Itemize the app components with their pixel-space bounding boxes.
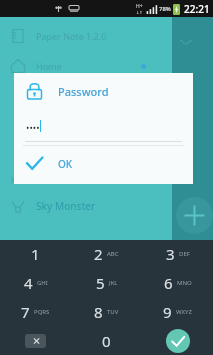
staticText: 8 xyxy=(94,302,103,322)
staticText: 9 xyxy=(163,302,172,322)
button[interactable]: OK xyxy=(14,147,193,180)
staticText: Password xyxy=(58,84,109,99)
staticText: •••• xyxy=(26,121,40,133)
button[interactable]: Add note xyxy=(176,197,213,234)
staticText: WXYZ xyxy=(176,308,192,316)
staticText: Paper Note 1.2.0 xyxy=(36,30,107,42)
staticText: 3 xyxy=(166,244,175,264)
staticText: 6 xyxy=(164,273,173,293)
staticText: OK xyxy=(58,157,73,171)
staticText: JKL xyxy=(109,279,118,287)
button[interactable]: 8 xyxy=(71,297,142,326)
staticText: ↓↑ xyxy=(136,10,143,15)
button[interactable]: Home xyxy=(0,51,172,81)
staticText: H+ xyxy=(136,3,143,10)
staticText: TUV xyxy=(107,308,119,316)
staticText: 4 xyxy=(24,273,33,293)
staticText: ABC xyxy=(107,250,119,258)
button[interactable]: 1 xyxy=(0,240,71,268)
button[interactable]: Sky Monster xyxy=(0,191,172,221)
staticText: DEF xyxy=(179,250,190,258)
staticText: Sky Monster xyxy=(36,199,96,213)
staticText: 5 xyxy=(96,273,105,293)
staticText: PQRS xyxy=(34,308,50,316)
staticText: 1 xyxy=(31,244,40,264)
button[interactable]: 5 xyxy=(71,268,142,297)
button[interactable]: 0 xyxy=(71,326,142,355)
staticText: 78% xyxy=(159,5,171,13)
staticText: 2 xyxy=(94,244,103,264)
button[interactable]: Paper Note 1.2.0 xyxy=(0,21,172,51)
button[interactable]: 2 xyxy=(71,240,142,268)
staticText: 7 xyxy=(21,302,30,322)
staticText: Home xyxy=(36,60,62,72)
staticText: GHI xyxy=(37,279,48,287)
staticText: 0 xyxy=(102,331,111,351)
button[interactable]: 4 xyxy=(0,268,71,297)
other: Expand xyxy=(177,36,195,48)
button[interactable]: Backspace xyxy=(0,326,71,355)
staticText: Mini Game xyxy=(11,175,52,186)
button[interactable]: 9 xyxy=(142,297,213,326)
staticText: 22:21 xyxy=(184,2,210,16)
button[interactable]: 6 xyxy=(142,268,213,297)
button[interactable]: 7 xyxy=(0,297,71,326)
button[interactable]: 3 xyxy=(142,240,213,268)
staticText: MNO xyxy=(177,279,192,287)
button[interactable]: Confirm xyxy=(142,326,213,355)
